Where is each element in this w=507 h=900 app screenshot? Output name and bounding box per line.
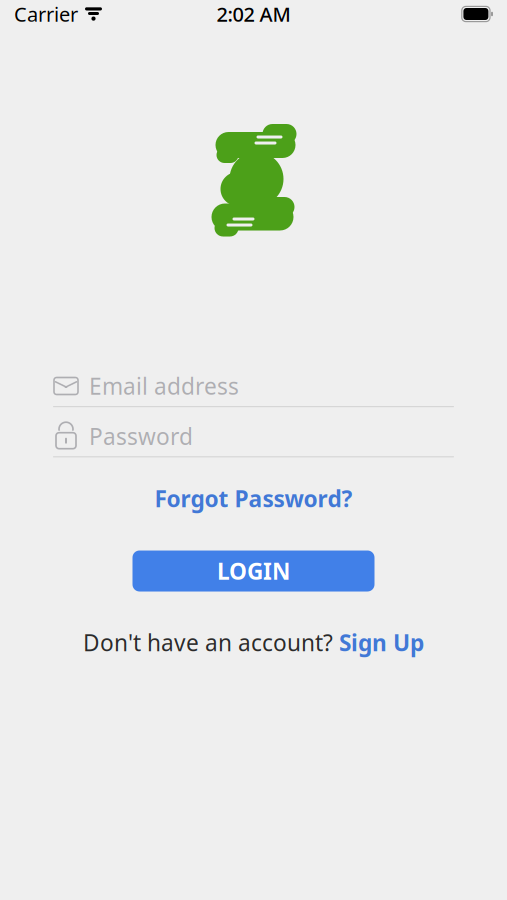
button[interactable]: Sign Up	[339, 627, 424, 658]
staticText: Forgot Password?	[154, 483, 352, 513]
button[interactable]: Forgot Password?	[146, 479, 360, 517]
staticText: Email address	[89, 371, 239, 401]
staticText: Carrier	[14, 1, 78, 27]
button[interactable]: LOGIN	[132, 550, 374, 591]
staticText: Password	[89, 421, 193, 451]
staticText: 2:02 AM	[216, 1, 290, 27]
staticText: LOGIN	[217, 556, 290, 586]
staticText: Don't have an account?	[83, 627, 339, 658]
staticText: Sign Up	[339, 627, 424, 658]
